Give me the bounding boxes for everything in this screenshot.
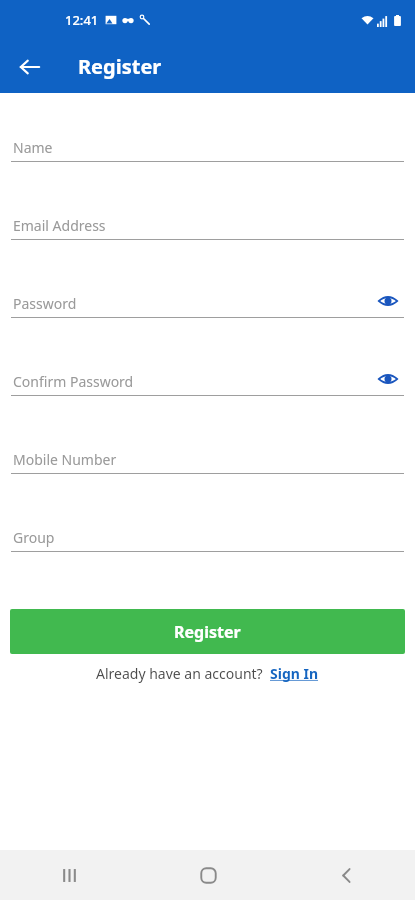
staticText: Sign In	[270, 664, 319, 683]
button[interactable]: Recents	[0, 850, 139, 900]
button[interactable]: Back	[8, 45, 52, 89]
staticText: Name	[13, 138, 53, 157]
button[interactable]: Mobile Number	[0, 432, 415, 510]
button[interactable]: Sign In	[270, 664, 319, 683]
staticText: Password	[13, 294, 77, 313]
button[interactable]: Back	[277, 850, 415, 900]
button[interactable]: Toggle password visibility	[373, 364, 403, 394]
button[interactable]: Register	[10, 609, 405, 654]
button[interactable]: Toggle password visibility	[373, 286, 403, 316]
button[interactable]: Password	[0, 276, 415, 354]
staticText: Confirm Password	[13, 372, 134, 391]
staticText: Already have an account?	[96, 664, 263, 683]
staticText: Register	[174, 621, 241, 643]
staticText: Mobile Number	[13, 450, 117, 469]
button[interactable]: Name	[0, 120, 415, 198]
button[interactable]: Email Address	[0, 198, 415, 276]
staticText: Email Address	[13, 216, 106, 235]
staticText: Register	[78, 53, 162, 80]
button[interactable]: Confirm Password	[0, 354, 415, 432]
staticText: 12:41	[65, 11, 99, 29]
staticText: Group	[13, 528, 55, 547]
button[interactable]: Home	[139, 850, 277, 900]
button[interactable]: Group	[0, 510, 415, 588]
